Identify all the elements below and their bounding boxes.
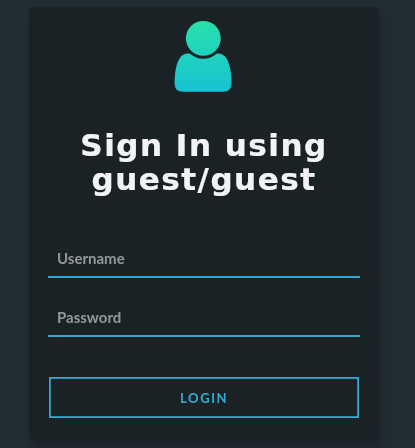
other: User avatar xyxy=(174,21,232,92)
button[interactable]: LOGIN xyxy=(49,377,359,418)
staticText: Sign In using guest/guest xyxy=(29,127,379,198)
button[interactable]: Password xyxy=(48,309,360,339)
staticText: Username xyxy=(57,249,125,267)
staticText: LOGIN xyxy=(180,390,229,406)
button[interactable]: Username xyxy=(48,250,360,280)
staticText: Password xyxy=(57,308,122,326)
